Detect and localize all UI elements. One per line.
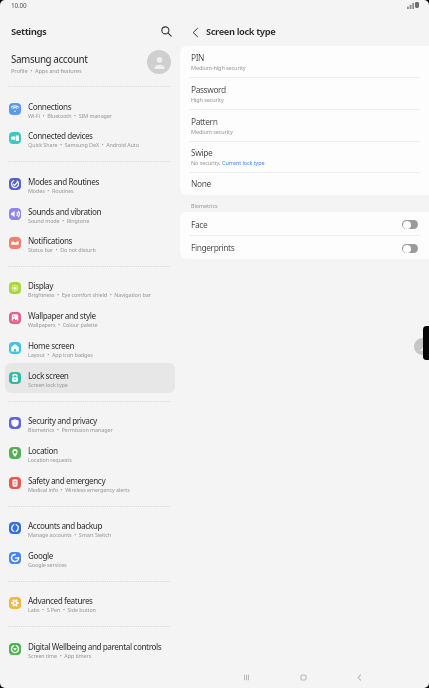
staticText: None	[191, 178, 211, 189]
staticText: Face	[191, 219, 208, 230]
staticText: Password	[191, 84, 226, 95]
button[interactable]: Fingerprints	[180, 236, 429, 259]
staticText: Connections	[28, 101, 72, 112]
button[interactable]: Lock screen	[5, 363, 175, 393]
staticText: Connected devices	[28, 130, 93, 141]
staticText: Samsung account	[11, 53, 88, 66]
button[interactable]: Back	[185, 22, 205, 42]
staticText: Screen lock type	[206, 25, 276, 38]
button[interactable]: Digital Wellbeing and parental controls	[5, 634, 175, 664]
staticText: Biometrics	[191, 202, 218, 209]
button[interactable]: None	[180, 173, 429, 195]
staticText: PIN	[191, 52, 205, 63]
button[interactable]: Toggle off	[402, 220, 418, 229]
staticText: Accounts and backup	[28, 520, 102, 531]
staticText: Quick Share • Samsung DeX • Android Auto	[28, 141, 139, 148]
button[interactable]: Display	[5, 273, 175, 303]
button[interactable]: Safety and emergency	[5, 468, 175, 498]
staticText: Wallpapers • Colour palette	[28, 321, 98, 328]
button[interactable]: Search	[156, 21, 176, 41]
staticText: No security,	[191, 159, 222, 166]
staticText: Screen lock type	[28, 381, 68, 388]
button[interactable]: Advanced features	[5, 588, 175, 618]
button[interactable]: Connected devices	[5, 123, 175, 153]
staticText: Medium security	[191, 128, 233, 135]
staticText: Location	[28, 445, 58, 456]
staticText: Swipe	[191, 147, 213, 158]
staticText: Location requests	[28, 456, 72, 463]
button[interactable]: Password	[180, 78, 429, 110]
staticText: Advanced features	[28, 595, 93, 606]
button[interactable]: Location	[5, 438, 175, 468]
button[interactable]: Modes and Routines	[5, 169, 175, 199]
button[interactable]: Connections	[5, 94, 175, 124]
staticText: Pattern	[191, 116, 218, 127]
staticText: Wallpaper and style	[28, 310, 96, 321]
staticText: Digital Wellbeing and parental controls	[28, 641, 162, 652]
staticText: Labs • S Pen • Side button	[28, 606, 96, 613]
staticText: Status bar • Do not disturb	[28, 246, 96, 253]
staticText: Sound mode • Ringtone	[28, 217, 90, 224]
staticText: Screen time • App timers	[28, 652, 92, 659]
button[interactable]: Notifications	[5, 228, 175, 258]
staticText: Medium-high security	[191, 64, 246, 71]
staticText: Notifications	[28, 235, 73, 246]
staticText: Google services	[28, 561, 67, 568]
staticText: Modes and Routines	[28, 176, 99, 187]
staticText: Biometrics • Permission manager	[28, 426, 113, 433]
staticText: Profile • Apps and features	[11, 67, 82, 75]
staticText: Google	[28, 550, 53, 561]
button[interactable]: Sounds and vibration	[5, 199, 175, 229]
staticText: Lock screen	[28, 370, 69, 381]
button[interactable]: Samsung account	[0, 46, 180, 78]
staticText: Medical info • Wireless emergency alerts	[28, 486, 130, 493]
button[interactable]: Recents	[237, 668, 255, 686]
button[interactable]: PIN	[180, 46, 429, 78]
staticText: Settings	[11, 25, 47, 38]
staticText: Layout • App icon badges	[28, 351, 93, 358]
button[interactable]: Pattern	[180, 110, 429, 142]
staticText: Fingerprints	[191, 242, 235, 253]
staticText: Sounds and vibration	[28, 206, 102, 217]
button[interactable]: Edge panel handle	[423, 326, 429, 360]
button[interactable]: Accounts and backup	[5, 513, 175, 543]
staticText: Brightness • Eye comfort shield • Naviga…	[28, 291, 151, 298]
staticText: Display	[28, 280, 53, 291]
staticText: Current lock type	[222, 159, 265, 166]
staticText: Modes • Routines	[28, 187, 74, 194]
button[interactable]: Toggle off	[402, 244, 418, 253]
button[interactable]: Wallpaper and style	[5, 303, 175, 333]
button[interactable]: Back	[350, 668, 368, 686]
button[interactable]: Google	[5, 543, 175, 573]
button[interactable]: Face	[180, 212, 429, 236]
staticText: High security	[191, 96, 224, 103]
button[interactable]: Swipe	[180, 141, 429, 173]
staticText: Home screen	[28, 340, 75, 351]
button[interactable]: Home screen	[5, 333, 175, 363]
staticText: Manage accounts • Smart Switch	[28, 531, 111, 538]
staticText: Safety and emergency	[28, 475, 106, 486]
staticText: Wi-Fi • Bluetooth • SIM manager	[28, 112, 112, 119]
button[interactable]: Home	[294, 668, 312, 686]
staticText: 10.00	[11, 1, 27, 10]
button[interactable]: Security and privacy	[5, 408, 175, 438]
staticText: Security and privacy	[28, 415, 97, 426]
